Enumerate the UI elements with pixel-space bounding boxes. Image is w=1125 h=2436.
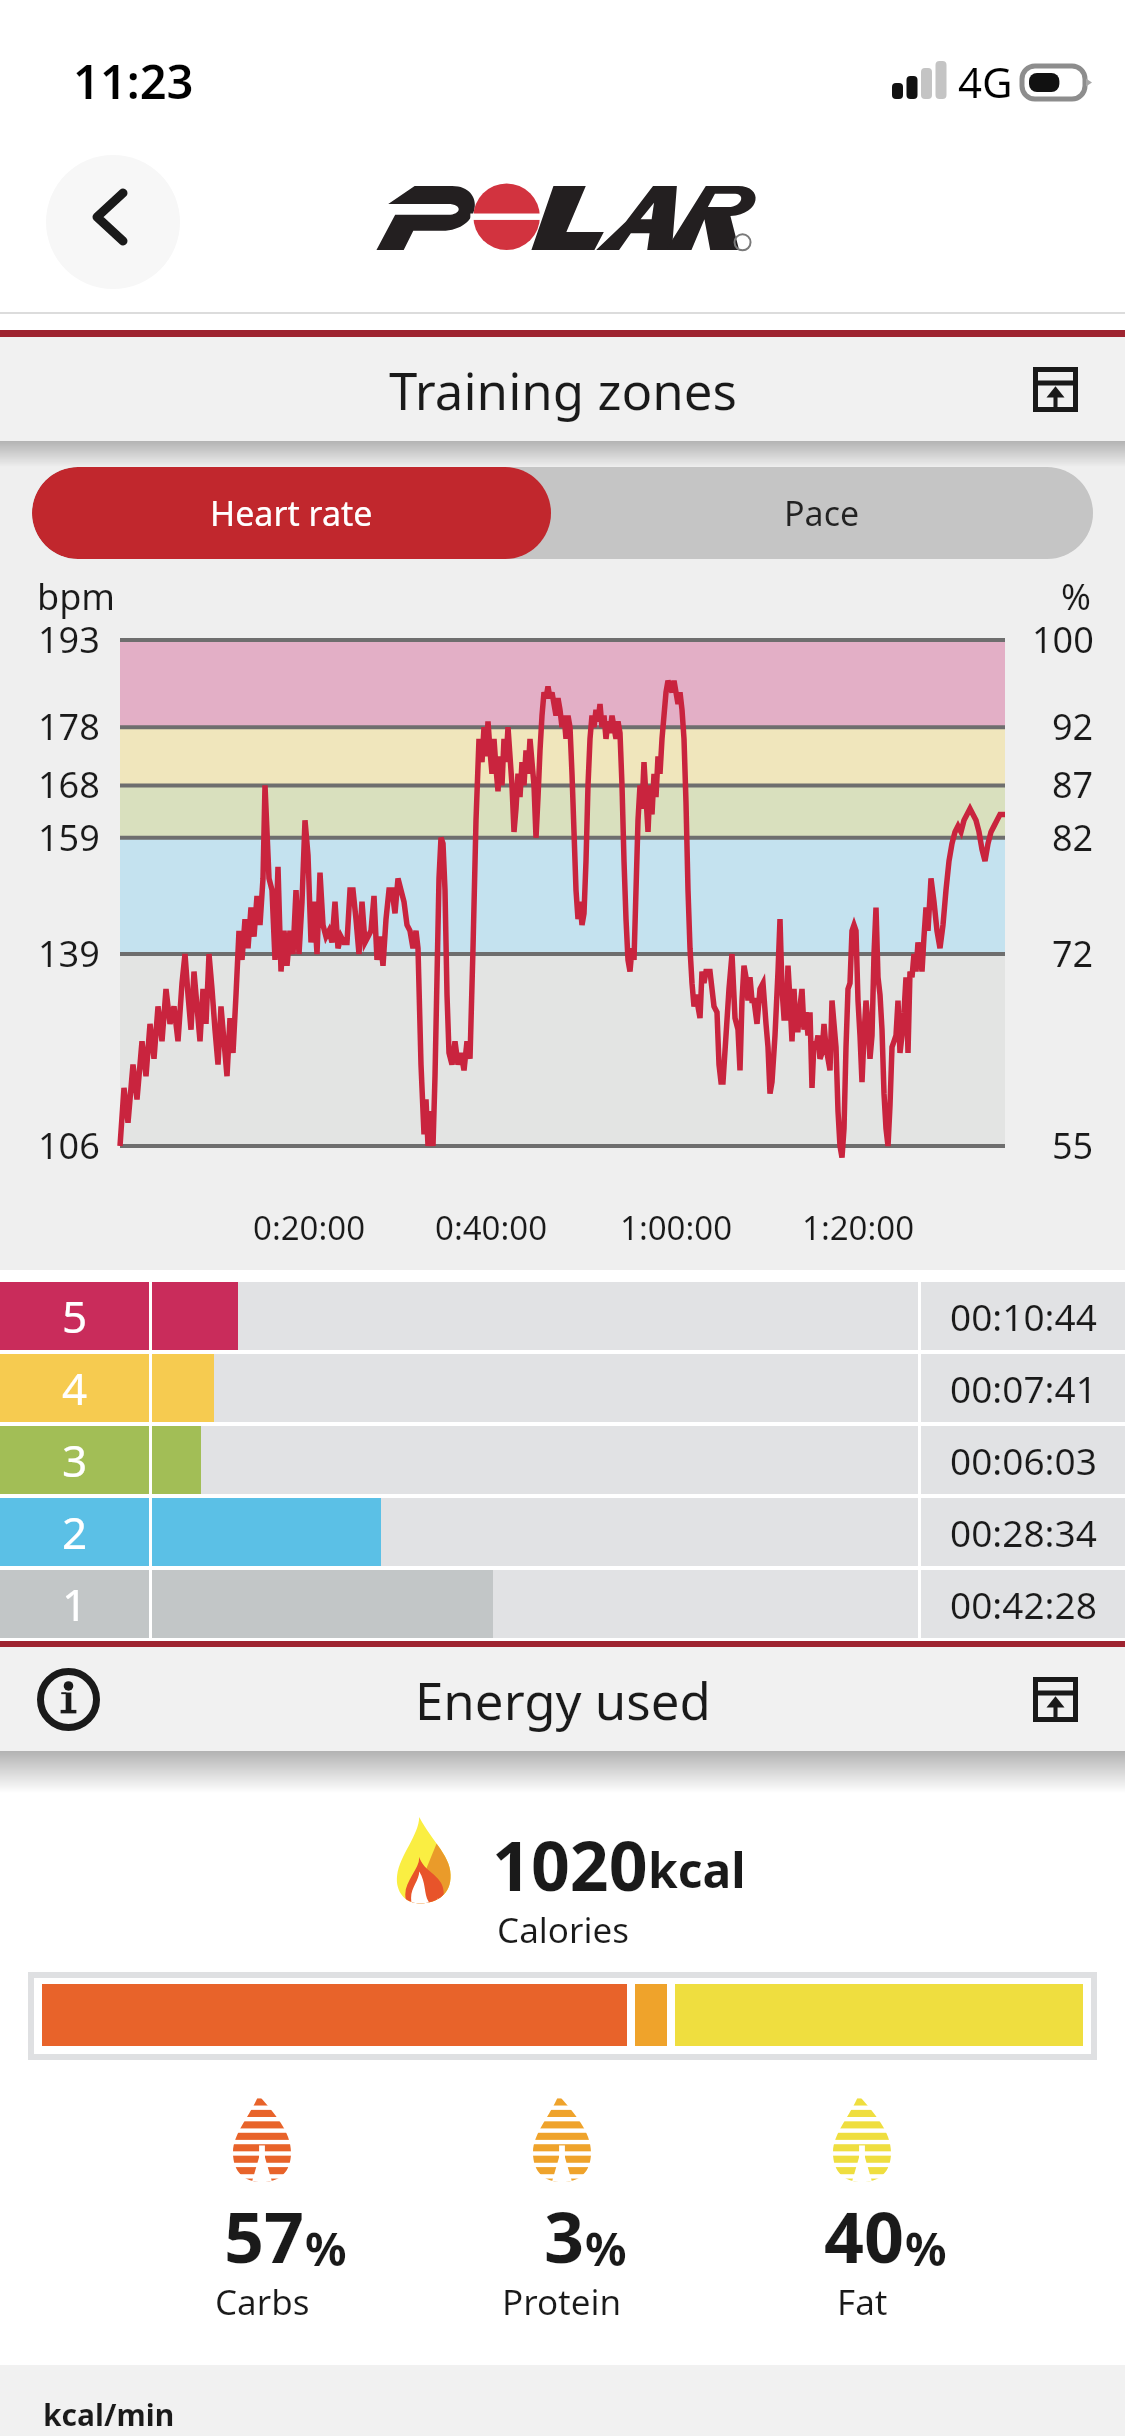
staticText: kcal/min [43,2394,175,2435]
staticText: kcal [648,1837,746,1902]
staticText: 4 [62,1358,88,1418]
button[interactable]: Collapse section [1033,367,1078,412]
staticText: 178 [38,702,100,751]
staticText: % [305,2217,347,2280]
button[interactable]: 5 [0,1282,1125,1350]
staticText: Carbs [215,2278,310,2326]
button[interactable]: Pace [551,467,1093,559]
staticText: 1020 [492,1818,648,1911]
staticText: % [905,2217,947,2280]
button[interactable]: Training zones [0,337,1125,441]
staticText: 55 [1052,1121,1094,1170]
staticText: 3 [544,2188,585,2283]
staticText: Protein [502,2278,622,2326]
staticText: 3 [62,1430,88,1490]
staticText: 57 [224,2188,305,2283]
button[interactable]: 3 [0,1426,1125,1494]
button[interactable]: Collapse section [1033,1677,1078,1722]
staticText: 1:00:00 [620,1205,733,1250]
staticText: 168 [38,760,100,809]
button[interactable]: 2 [0,1498,1125,1566]
staticText: Fat [837,2278,888,2326]
staticText: 00:10:44 [950,1291,1097,1341]
staticText: 0:40:00 [435,1205,548,1250]
staticText: 82 [1052,813,1094,862]
staticText: 0:20:00 [253,1205,366,1250]
staticText: 11:23 [73,49,194,113]
staticText: Calories [497,1906,629,1954]
staticText: Training zones [389,355,737,424]
button[interactable]: Heart rate [32,467,551,559]
staticText: 1:20:00 [802,1205,915,1250]
button[interactable]: 1 [0,1570,1125,1638]
staticText: Heart rate [210,490,373,536]
staticText: % [1061,572,1091,621]
staticText: % [585,2217,627,2280]
staticText: 72 [1052,929,1094,978]
staticText: 5 [62,1286,88,1346]
staticText: 193 [38,615,100,664]
staticText: 40 [824,2188,905,2283]
button[interactable]: Info [0,1647,1125,1751]
staticText: 1 [62,1574,88,1634]
staticText: bpm [37,572,115,621]
staticText: 100 [1032,615,1094,664]
button[interactable]: Back [46,155,180,289]
staticText: Energy used [415,1665,711,1734]
button[interactable]: Info [37,1668,100,1731]
staticText: 92 [1052,702,1094,751]
staticText: 00:07:41 [950,1363,1097,1413]
staticText: 2 [62,1502,88,1562]
staticText: Pace [784,490,860,536]
staticText: 87 [1052,760,1094,809]
staticText: 159 [38,813,100,862]
button[interactable]: 4 [0,1354,1125,1422]
staticText: 00:42:28 [950,1579,1097,1629]
staticText: 106 [38,1121,100,1170]
staticText: 139 [38,929,100,978]
staticText: 00:28:34 [950,1507,1097,1557]
staticText: 00:06:03 [950,1435,1097,1485]
staticText: 4G [958,53,1013,110]
